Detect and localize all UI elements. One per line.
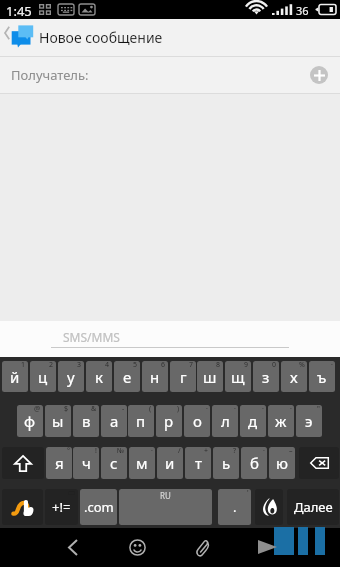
button[interactable]: и — [157, 447, 183, 479]
staticText: ф — [24, 411, 36, 431]
staticText: @ — [34, 405, 41, 414]
button[interactable]: +!= — [45, 489, 78, 525]
button[interactable]: Получатель: — [0, 57, 340, 93]
button[interactable]: Back — [52, 531, 94, 564]
staticText: х — [290, 367, 298, 387]
staticText: 5 — [133, 361, 138, 370]
staticText: · — [151, 447, 153, 456]
button[interactable]: Далее — [287, 489, 339, 525]
staticText: · — [206, 405, 208, 414]
staticText: · — [331, 361, 333, 370]
staticText: 0 — [272, 361, 277, 370]
staticText: ч — [82, 453, 91, 473]
staticText: ю — [276, 453, 288, 473]
button[interactable]: ш — [197, 361, 223, 392]
button[interactable]: м — [129, 447, 155, 479]
button[interactable]: а — [101, 405, 127, 437]
button[interactable]: Backspace — [299, 447, 339, 479]
button[interactable]: я — [46, 447, 72, 479]
button[interactable]: л — [212, 405, 238, 437]
staticText: г — [180, 367, 187, 387]
staticText: 9 — [244, 361, 249, 370]
staticText: % — [299, 361, 305, 370]
button[interactable]: ъ — [309, 361, 335, 392]
button[interactable]: Emoji — [117, 531, 158, 564]
staticText: ц — [38, 367, 48, 387]
staticText: р — [164, 411, 174, 431]
button[interactable]: ц — [30, 361, 56, 392]
button[interactable]: Back — [0, 19, 37, 56]
staticText: ° — [67, 447, 70, 456]
staticText: у — [67, 367, 75, 387]
staticText: - — [122, 405, 125, 414]
button[interactable]: Swype menu — [255, 489, 283, 525]
staticText: SMS/MMS — [63, 329, 120, 345]
button[interactable]: о — [184, 405, 210, 437]
button[interactable]: .com — [80, 489, 117, 525]
staticText: ъ — [317, 367, 327, 387]
button[interactable]: г — [170, 361, 196, 392]
staticText: ж — [275, 411, 287, 431]
staticText: я — [55, 453, 64, 473]
staticText: й — [10, 367, 20, 387]
button[interactable]: к — [86, 361, 112, 392]
button[interactable]: д — [240, 405, 266, 437]
button[interactable]: с — [101, 447, 127, 479]
staticText: $ — [64, 405, 69, 414]
staticText: ( — [149, 405, 152, 414]
staticText: т — [195, 453, 202, 473]
staticText: ' — [247, 489, 249, 498]
button[interactable]: Add recipient — [310, 66, 328, 84]
staticText: № — [117, 447, 125, 456]
staticText: .com — [84, 498, 114, 516]
staticText: 36 — [296, 3, 309, 18]
button[interactable]: е — [114, 361, 140, 392]
button[interactable]: . — [218, 489, 251, 525]
staticText: 6 — [161, 361, 166, 370]
staticText: . — [233, 498, 237, 516]
button[interactable]: у — [58, 361, 84, 392]
button[interactable]: Attach — [182, 531, 224, 564]
button[interactable]: Shift — [2, 447, 44, 479]
staticText: + — [204, 447, 209, 456]
button[interactable]: ы — [45, 405, 71, 437]
staticText: ? — [233, 447, 237, 456]
button[interactable]: н — [142, 361, 168, 392]
button[interactable]: й — [2, 361, 28, 392]
button[interactable]: з — [253, 361, 279, 392]
staticText: 1:45 — [6, 2, 32, 20]
staticText: 2 — [49, 361, 54, 370]
button[interactable]: ю — [269, 447, 295, 479]
button[interactable]: Swipe input — [2, 489, 43, 525]
staticText: 1 — [21, 361, 26, 370]
button[interactable]: п — [128, 405, 154, 437]
staticText: ы — [52, 411, 64, 431]
staticText: 3 — [77, 361, 82, 370]
button[interactable]: щ — [225, 361, 251, 392]
staticText: ш — [203, 367, 217, 387]
button[interactable]: ж — [268, 405, 294, 437]
staticText: л — [221, 411, 230, 431]
button[interactable]: ф — [17, 405, 43, 437]
button[interactable]: э — [296, 405, 322, 437]
staticText: 8 — [216, 361, 221, 370]
staticText: RU — [160, 490, 171, 501]
button[interactable]: ь — [213, 447, 239, 479]
button[interactable]: ч — [73, 447, 99, 479]
button[interactable]: б — [241, 447, 267, 479]
staticText: · — [234, 405, 236, 414]
staticText: 4 — [105, 361, 110, 370]
button[interactable]: т — [185, 447, 211, 479]
staticText: · — [262, 405, 264, 414]
staticText: д — [248, 411, 258, 431]
button[interactable]: х — [281, 361, 307, 392]
staticText: Далее — [294, 498, 333, 516]
staticText: м — [136, 453, 148, 473]
staticText: щ — [231, 367, 245, 387]
button[interactable]: р — [156, 405, 182, 437]
staticText: · — [290, 405, 292, 414]
staticText: / — [178, 447, 181, 456]
button[interactable]: в — [73, 405, 99, 437]
button[interactable]: Space — [119, 489, 212, 525]
